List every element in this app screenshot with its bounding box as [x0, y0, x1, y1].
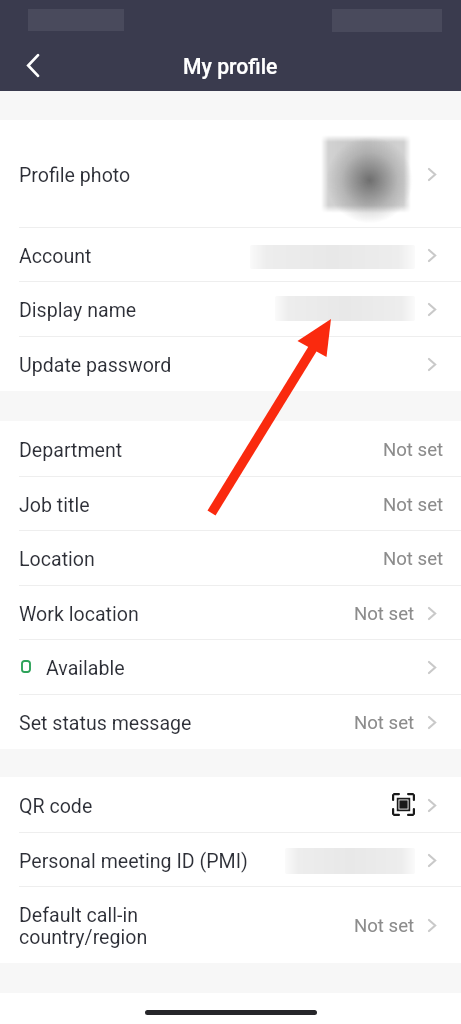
- button[interactable]: Available: [0, 639, 461, 694]
- staticText: My profile: [183, 54, 278, 79]
- button[interactable]: Personal meeting ID (PMI): [0, 832, 461, 887]
- staticText: Location: [19, 548, 95, 571]
- staticText: Update password: [19, 354, 172, 377]
- button[interactable]: Update password: [0, 336, 461, 391]
- staticText: Set status message: [19, 712, 192, 735]
- button[interactable]: Job title: [0, 476, 461, 531]
- staticText: QR code: [19, 795, 93, 818]
- button[interactable]: Account: [0, 227, 461, 282]
- staticText: Not set: [354, 603, 415, 625]
- staticText: Available: [46, 657, 125, 680]
- staticText: Department: [19, 439, 123, 462]
- staticText: Account: [19, 245, 92, 268]
- staticText: Display name: [19, 299, 137, 322]
- button[interactable]: Location: [0, 530, 461, 585]
- button[interactable]: Department: [0, 421, 461, 476]
- staticText: Work location: [19, 603, 139, 626]
- button[interactable]: QR code: [0, 777, 461, 832]
- staticText: Default call-in country/region: [19, 904, 148, 949]
- button[interactable]: Profile photo: [0, 120, 461, 227]
- staticText: Profile photo: [19, 164, 131, 187]
- button[interactable]: Default call-in country/region: [0, 886, 461, 963]
- staticText: Not set: [354, 915, 415, 937]
- staticText: Personal meeting ID (PMI): [19, 850, 248, 873]
- button[interactable]: Set status message: [0, 694, 461, 749]
- staticText: Not set: [354, 712, 415, 734]
- button[interactable]: Display name: [0, 281, 461, 336]
- staticText: Not set: [383, 439, 444, 461]
- staticText: Not set: [383, 494, 444, 516]
- button[interactable]: Back: [10, 42, 56, 88]
- button[interactable]: Work location: [0, 585, 461, 640]
- staticText: Job title: [19, 494, 90, 517]
- staticText: Not set: [383, 548, 444, 570]
